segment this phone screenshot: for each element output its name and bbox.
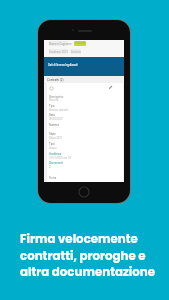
staticText: Rossi M. bbox=[49, 99, 59, 102]
staticText: Annuo bbox=[49, 147, 57, 150]
staticText: Nominativo bbox=[49, 95, 64, 98]
staticText: Rinnovo annuale bbox=[49, 109, 69, 112]
button[interactable] bbox=[49, 41, 68, 46]
button[interactable] bbox=[70, 49, 81, 54]
staticText: Tipo bbox=[49, 142, 55, 145]
staticText: 31/12/2021 ore 12 bbox=[49, 157, 71, 160]
button[interactable] bbox=[49, 49, 68, 54]
button[interactable] bbox=[74, 41, 86, 46]
staticText: Scadenze 2021 bbox=[49, 50, 69, 53]
staticText: Stato bbox=[49, 132, 56, 135]
button[interactable]: Edit bbox=[108, 85, 113, 90]
button[interactable]: Home bbox=[78, 186, 90, 198]
staticText: Archivio bbox=[71, 50, 82, 53]
staticText: Firma velocemente contratti, proroghe e … bbox=[20, 231, 156, 280]
staticText: Nome e Cognome bbox=[49, 42, 72, 45]
staticText: Scadenza bbox=[49, 152, 62, 155]
staticText: Tipo bbox=[49, 104, 55, 107]
staticText: 2 bbox=[49, 166, 51, 169]
staticText: Contratti bbox=[75, 42, 86, 45]
button[interactable] bbox=[47, 83, 123, 182]
staticText: Data bbox=[49, 113, 55, 116]
staticText: Firma bbox=[49, 176, 57, 179]
staticText: Contratti (2) bbox=[47, 78, 64, 82]
staticText: Documenti bbox=[49, 161, 63, 164]
staticText: - bbox=[49, 127, 50, 130]
staticText: 05/05/2021 bbox=[49, 118, 63, 121]
staticText: Numero bbox=[49, 123, 59, 126]
staticText: Dati di licenza legalizzati bbox=[48, 63, 78, 66]
button[interactable] bbox=[44, 57, 124, 76]
staticText: Attivo 2021 bbox=[49, 137, 63, 140]
